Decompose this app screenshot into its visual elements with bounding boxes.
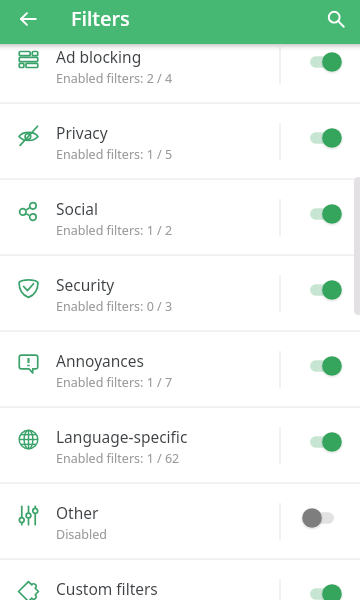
staticText: Privacy (56, 122, 108, 143)
button[interactable]: Custom filters (0, 560, 360, 600)
button[interactable]: Security (0, 256, 360, 332)
staticText: Enabled filters: 1 / 7 (56, 374, 173, 391)
staticText: Ad blocking (56, 46, 142, 67)
staticText: Social (56, 198, 99, 219)
staticText: Filters (71, 5, 130, 32)
button[interactable]: Social toggle (281, 180, 360, 256)
staticText: Enabled filters: 1 / 2 (56, 222, 173, 239)
staticText: Enabled filters: 1 / 5 (56, 146, 173, 163)
staticText: Language-specific (56, 426, 188, 447)
button[interactable]: Language-specific (0, 408, 360, 484)
staticText: Enabled filters: 2 / 4 (56, 70, 173, 87)
button[interactable]: Ad blocking (0, 28, 360, 104)
button[interactable]: Social (0, 180, 360, 256)
button[interactable]: Custom filters toggle (281, 560, 360, 600)
button[interactable]: Security toggle (281, 256, 360, 332)
button[interactable]: Annoyances toggle (281, 332, 360, 408)
staticText: Enabled filters: 1 / 62 (56, 450, 180, 467)
button[interactable]: Language-specific toggle (281, 408, 360, 484)
staticText: Annoyances (56, 350, 144, 371)
staticText: Disabled (56, 526, 108, 543)
staticText: Other (56, 502, 99, 523)
button[interactable]: Annoyances (0, 332, 360, 408)
button[interactable]: Other (0, 484, 360, 560)
staticText: Custom filters (56, 578, 158, 599)
button[interactable]: Ad blocking toggle (281, 28, 360, 104)
button[interactable]: Back (8, 0, 48, 39)
button[interactable]: Other toggle (281, 484, 360, 560)
button[interactable]: Search (316, 0, 356, 39)
staticText: Enabled filters: 0 / 3 (56, 298, 173, 315)
button[interactable]: Privacy (0, 104, 360, 180)
button[interactable]: Privacy toggle (281, 104, 360, 180)
staticText: Security (56, 274, 115, 295)
